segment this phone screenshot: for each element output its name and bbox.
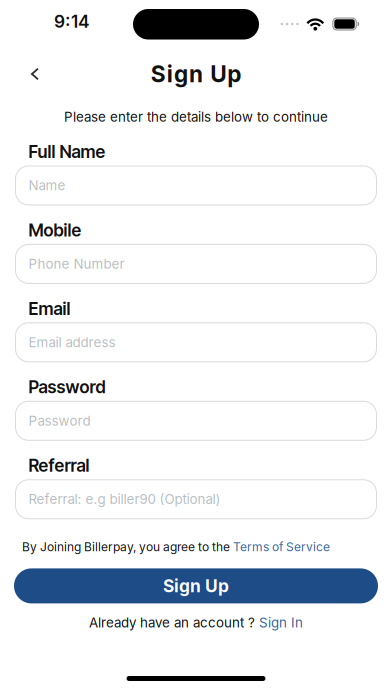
button[interactable]: Back [0, 68, 39, 80]
button[interactable]: Sign In [259, 615, 303, 631]
button[interactable]: Name [15, 165, 377, 205]
staticText: 9:14 [54, 11, 90, 32]
staticText: Already have an account ? [89, 615, 259, 631]
button[interactable]: Email address [15, 322, 377, 362]
staticText: Sign In [259, 615, 303, 631]
staticText: Referral [28, 455, 89, 476]
staticText: Password [28, 413, 90, 429]
button[interactable]: Phone Number [15, 244, 377, 284]
staticText: Email address [28, 334, 115, 350]
staticText: Mobile [28, 220, 81, 240]
staticText: Referral: e.g biller90 (Optional) [28, 491, 220, 507]
staticText: Please enter the details below to contin… [64, 109, 328, 125]
staticText: By Joining Billerpay, you agree to the [22, 540, 233, 554]
staticText: Terms of Service [233, 540, 330, 554]
button[interactable]: Terms of Service [233, 540, 330, 554]
button[interactable]: Sign Up [0, 568, 392, 603]
staticText: Password [28, 377, 105, 397]
staticText: Name [28, 178, 65, 193]
staticText: Sign Up [151, 61, 241, 87]
staticText: Full Name [28, 141, 105, 162]
staticText: Email [28, 298, 70, 319]
button[interactable]: Password [15, 401, 377, 441]
button[interactable]: Referral: e.g biller90 (Optional) [15, 479, 377, 519]
staticText: Sign Up [163, 576, 229, 596]
staticText: Phone Number [28, 256, 124, 272]
